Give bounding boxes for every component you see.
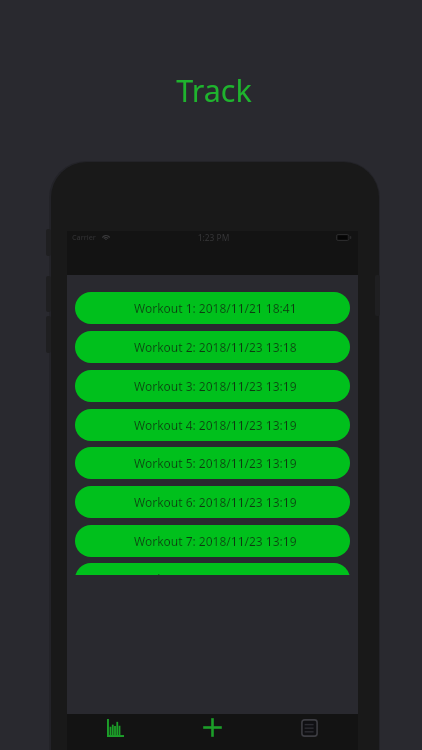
button[interactable]: Statistics — [67, 714, 164, 741]
staticText: Track — [3, 69, 422, 111]
staticText: Workout 1: 2018/11/21 18:41 — [134, 300, 297, 316]
staticText: 1:23 PM — [68, 232, 359, 243]
button[interactable]: Workout 8: 2018/11/23 13:19 — [75, 563, 350, 575]
staticText: Workout 3: 2018/11/23 13:19 — [134, 378, 297, 394]
button[interactable]: Workout 3: 2018/11/23 13:19 — [75, 370, 350, 402]
staticText: Workout 8: 2018/11/23 13:19 — [134, 571, 297, 575]
staticText: Workout 2: 2018/11/23 13:18 — [134, 339, 297, 355]
staticText: Workout 7: 2018/11/23 13:19 — [134, 533, 297, 549]
staticText: Carrier — [72, 232, 96, 242]
button[interactable]: Workout 1: 2018/11/21 18:41 — [75, 292, 350, 324]
staticText: Workout 5: 2018/11/23 13:19 — [134, 455, 297, 471]
button[interactable]: Workout 6: 2018/11/23 13:19 — [75, 486, 350, 518]
button[interactable]: Workout 2: 2018/11/23 13:18 — [75, 331, 350, 363]
button[interactable]: Workout 5: 2018/11/23 13:19 — [75, 447, 350, 479]
button[interactable]: Workout 4: 2018/11/23 13:19 — [75, 409, 350, 441]
button[interactable]: Workout 7: 2018/11/23 13:19 — [75, 525, 350, 557]
button[interactable]: Notes — [261, 714, 358, 741]
button[interactable]: Add workout — [164, 714, 261, 741]
staticText: Workout 4: 2018/11/23 13:19 — [134, 417, 297, 433]
staticText: Workout 6: 2018/11/23 13:19 — [134, 494, 297, 510]
